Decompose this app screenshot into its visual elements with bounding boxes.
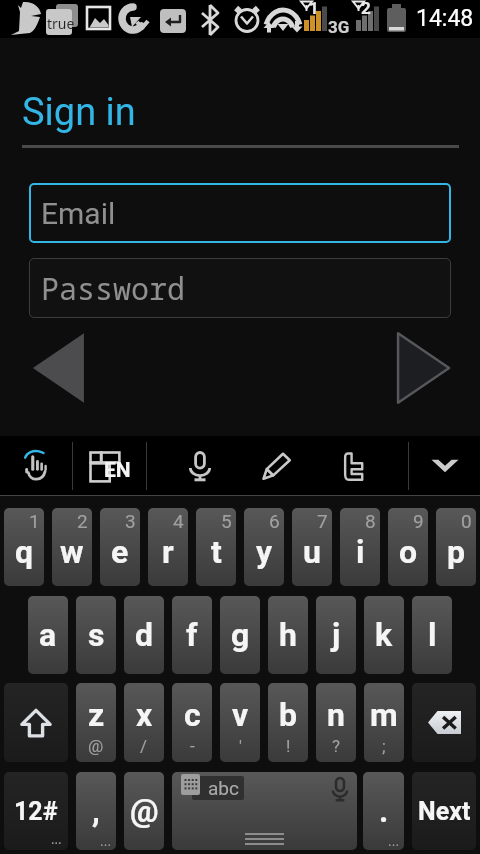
staticText: ? bbox=[332, 736, 341, 756]
button[interactable]: c bbox=[172, 683, 212, 762]
staticText: ; bbox=[382, 736, 386, 756]
staticText: r bbox=[162, 533, 174, 571]
staticText: x bbox=[136, 696, 153, 734]
staticText: ... bbox=[51, 830, 62, 848]
button[interactable]: h bbox=[268, 596, 308, 674]
staticText: m bbox=[370, 696, 398, 734]
staticText: 8 bbox=[365, 510, 376, 532]
staticText: y bbox=[256, 533, 273, 571]
staticText: - bbox=[190, 736, 195, 756]
staticText: d bbox=[135, 616, 154, 654]
staticText: 3G bbox=[328, 17, 350, 37]
button[interactable]: 6 bbox=[244, 508, 284, 586]
button[interactable]: Space bbox=[172, 772, 357, 850]
button[interactable]: 1 bbox=[4, 508, 44, 586]
button[interactable]: Shift bbox=[4, 683, 68, 762]
staticText: b bbox=[279, 696, 298, 734]
staticText: 14:48 bbox=[416, 5, 474, 32]
button[interactable]: Hide keyboard bbox=[409, 436, 480, 496]
button[interactable]: 0 bbox=[436, 508, 476, 586]
button[interactable]: @ bbox=[124, 772, 164, 850]
staticText: j bbox=[332, 616, 341, 654]
staticText: 5 bbox=[221, 510, 232, 532]
button[interactable]: g bbox=[220, 596, 260, 674]
button[interactable]: 8 bbox=[340, 508, 380, 586]
staticText: 12# bbox=[14, 797, 58, 826]
staticText: 9 bbox=[413, 510, 424, 532]
button[interactable]: Backspace bbox=[412, 683, 476, 762]
staticText: ... bbox=[100, 833, 112, 849]
button[interactable]: Password bbox=[29, 258, 451, 318]
staticText: u bbox=[303, 533, 321, 571]
staticText: @ bbox=[88, 736, 104, 756]
staticText: 0 bbox=[461, 510, 472, 532]
staticText: c bbox=[184, 696, 201, 734]
staticText: true bbox=[47, 14, 75, 33]
button[interactable]: 2 bbox=[52, 508, 92, 586]
button[interactable]: Voice input bbox=[147, 436, 253, 496]
button[interactable]: s bbox=[76, 596, 116, 674]
button[interactable]: 4 bbox=[148, 508, 188, 586]
button[interactable]: n bbox=[316, 683, 356, 762]
button[interactable]: Twitter bbox=[299, 436, 408, 496]
button[interactable]: Language EN bbox=[73, 436, 146, 496]
staticText: p bbox=[447, 533, 466, 571]
button[interactable]: Previous bbox=[30, 331, 88, 405]
button[interactable]: a bbox=[28, 596, 68, 674]
staticText: h bbox=[279, 616, 297, 654]
button[interactable]: Next bbox=[394, 331, 452, 405]
staticText: EN bbox=[104, 458, 131, 483]
staticText: n bbox=[327, 696, 345, 734]
button[interactable]: Email bbox=[29, 183, 451, 243]
staticText: 2 bbox=[361, 0, 371, 18]
button[interactable]: l bbox=[412, 596, 452, 674]
staticText: ! bbox=[286, 736, 291, 756]
button[interactable]: m bbox=[364, 683, 404, 762]
staticText: w bbox=[60, 533, 84, 571]
staticText: z bbox=[88, 696, 105, 734]
staticText: ... bbox=[388, 833, 400, 849]
staticText: l bbox=[428, 616, 437, 654]
staticText: @ bbox=[130, 792, 159, 830]
button[interactable]: Symbols bbox=[4, 772, 68, 850]
staticText: . bbox=[379, 792, 389, 830]
button[interactable]: d bbox=[124, 596, 164, 674]
staticText: 6 bbox=[269, 510, 280, 532]
button[interactable]: k bbox=[364, 596, 404, 674]
button[interactable]: x bbox=[124, 683, 164, 762]
staticText: Email bbox=[41, 196, 116, 231]
staticText: Password bbox=[41, 268, 185, 309]
button[interactable]: 7 bbox=[292, 508, 332, 586]
staticText: a bbox=[39, 616, 57, 654]
button[interactable]: b bbox=[268, 683, 308, 762]
button[interactable]: j bbox=[316, 596, 356, 674]
staticText: 7 bbox=[317, 510, 328, 532]
staticText: 4 bbox=[173, 510, 184, 532]
staticText: k bbox=[375, 616, 393, 654]
button[interactable]: v bbox=[220, 683, 260, 762]
staticText: 3 bbox=[125, 510, 136, 532]
staticText: / bbox=[140, 736, 148, 756]
staticText: f bbox=[186, 616, 198, 654]
button[interactable]: 5 bbox=[196, 508, 236, 586]
button[interactable]: Handwriting input bbox=[0, 436, 72, 496]
staticText: e bbox=[111, 533, 129, 571]
button[interactable]: f bbox=[172, 596, 212, 674]
staticText: 1 bbox=[309, 0, 319, 18]
button[interactable]: Next bbox=[412, 772, 476, 850]
button[interactable]: 9 bbox=[388, 508, 428, 586]
staticText: Next bbox=[418, 797, 471, 826]
staticText: abc bbox=[208, 777, 239, 799]
staticText: g bbox=[231, 616, 250, 654]
staticText: ' bbox=[239, 736, 242, 756]
button[interactable]: . bbox=[363, 772, 404, 850]
staticText: o bbox=[399, 533, 418, 571]
staticText: 1 bbox=[29, 510, 40, 532]
button[interactable]: z bbox=[76, 683, 116, 762]
button[interactable]: Pen bbox=[253, 436, 299, 496]
staticText: q bbox=[15, 533, 34, 571]
button[interactable]: 3 bbox=[100, 508, 140, 586]
staticText: 2 bbox=[77, 510, 88, 532]
staticText: i bbox=[356, 533, 365, 571]
button[interactable]: , bbox=[76, 772, 116, 850]
